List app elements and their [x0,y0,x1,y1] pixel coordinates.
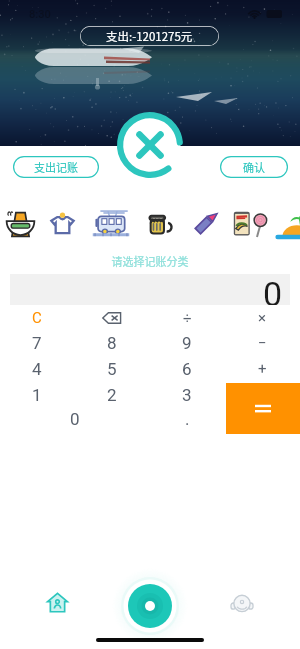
button[interactable]: Snacks [228,203,270,245]
staticText: C [32,309,42,327]
button[interactable]: Equals [226,383,300,434]
staticText: 2 [107,385,117,405]
button[interactable]: Clothing [41,203,83,245]
button[interactable]: 7 [13,331,61,355]
button[interactable]: × [238,306,286,330]
button[interactable]: 确认 [220,156,288,178]
button[interactable]: + [238,357,286,381]
button[interactable]: Home [40,585,75,620]
staticText: 4 [32,359,42,379]
button[interactable]: 2 [88,383,136,407]
staticText: + [258,360,267,378]
button[interactable]: 0 [51,407,99,431]
button[interactable]: Food [0,203,41,245]
button[interactable]: Add record [112,568,188,644]
button[interactable]: − [238,331,286,355]
staticText: 1 [32,385,42,405]
staticText: . [185,409,190,429]
button[interactable]: Transport [90,203,132,245]
button[interactable]: Beauty [185,203,227,245]
button[interactable]: 1 [13,383,61,407]
staticText: 请选择记账分类 [0,253,300,269]
staticText: 9 [182,333,192,353]
staticText: 5 [107,359,117,379]
button[interactable]: 8 [88,331,136,355]
button[interactable]: 支出:-1201275元 [80,26,219,46]
button[interactable]: 支出记账 [13,156,99,178]
staticText: 8 [107,333,117,353]
button[interactable]: 6 [163,357,211,381]
button[interactable]: 4 [13,357,61,381]
button[interactable]: ÷ [163,306,211,330]
staticText: − [258,334,267,352]
staticText: 0 [263,274,283,305]
staticText: ÷ [183,309,192,327]
staticText: 8:30 [29,8,51,21]
button[interactable]: Travel [268,203,300,245]
staticText: × [258,309,267,327]
button[interactable]: C [13,306,61,330]
button[interactable]: Profile [225,586,259,620]
staticText: 3 [182,385,192,405]
button[interactable]: . [163,407,211,431]
staticText: 6 [182,359,192,379]
button[interactable]: 9 [163,331,211,355]
staticText: 7 [32,333,42,353]
button[interactable]: Drinks [139,203,181,245]
button[interactable]: Cancel [114,109,186,181]
staticText: 确认 [243,159,265,175]
button[interactable]: 3 [163,383,211,407]
button[interactable]: Backspace [88,306,136,330]
button[interactable]: 5 [88,357,136,381]
staticText: 支出记账 [34,159,78,175]
staticText: 支出:-1201275元 [106,28,193,45]
staticText: 0 [70,409,80,429]
